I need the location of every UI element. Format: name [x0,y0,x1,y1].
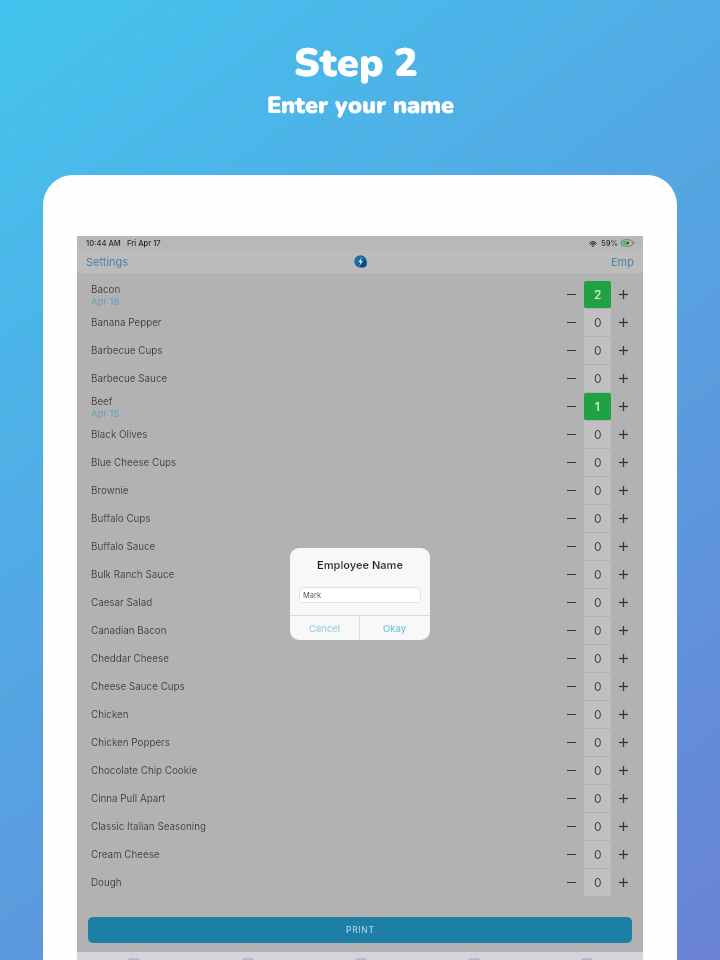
button[interactable]: Decrease Cheese Sauce Cups [560,672,582,700]
button[interactable]: 0 [584,561,611,588]
button[interactable]: Increase Cheddar Cheese [612,644,634,672]
button[interactable]: Waste [417,952,530,960]
button[interactable]: 0 [584,477,611,504]
button[interactable]: Increase Brownie [612,476,634,504]
button[interactable]: Increase Canadian Bacon [612,616,634,644]
button[interactable]: 0 [584,589,611,616]
button[interactable]: 0 [584,337,611,364]
button[interactable]: Chicken [77,700,643,728]
button[interactable]: Caesar Salad [77,588,643,616]
button[interactable]: 0 [584,785,611,812]
button[interactable]: Settings [530,952,643,960]
button[interactable]: Mark [299,587,421,603]
button[interactable]: Barbecue Cups [77,336,643,364]
button[interactable]: Decrease Blue Cheese Cups [560,448,582,476]
button[interactable]: 0 [584,729,611,756]
button[interactable]: 1 [584,393,611,420]
button[interactable]: Decrease Beef [560,392,582,420]
button[interactable]: Blue Cheese Cups [77,448,643,476]
button[interactable]: Decrease Bulk Ranch Sauce [560,560,582,588]
button[interactable]: Orders [77,952,191,960]
button[interactable]: Increase Barbecue Cups [612,336,634,364]
button[interactable]: Increase Barbecue Sauce [612,364,634,392]
button[interactable]: Increase Buffalo Sauce [612,532,634,560]
button[interactable]: Increase Black Olives [612,420,634,448]
button[interactable]: 0 [584,309,611,336]
button[interactable]: Decrease Canadian Bacon [560,616,582,644]
button[interactable]: Decrease Buffalo Sauce [560,532,582,560]
button[interactable]: Beef [77,392,643,420]
button[interactable]: Increase Cheese Sauce Cups [612,672,634,700]
button[interactable]: Increase Blue Cheese Cups [612,448,634,476]
button[interactable]: Decrease Chicken Poppers [560,728,582,756]
button[interactable]: Increase Caesar Salad [612,588,634,616]
button[interactable]: Decrease Black Olives [560,420,582,448]
button[interactable]: 0 [584,869,611,896]
button[interactable]: Reports [304,952,417,960]
button[interactable]: 0 [584,421,611,448]
button[interactable]: Inventory [191,952,304,960]
button[interactable]: Decrease Chocolate Chip Cookie [560,756,582,784]
button[interactable]: Decrease Cheddar Cheese [560,644,582,672]
button[interactable]: Dough [77,868,643,896]
button[interactable]: Decrease Chicken [560,700,582,728]
button[interactable]: 0 [584,701,611,728]
button[interactable]: Buffalo Sauce [77,532,643,560]
button[interactable]: Buffalo Cups [77,504,643,532]
button[interactable]: 0 [584,645,611,672]
button[interactable]: Decrease Dough [560,868,582,896]
button[interactable]: 0 [584,757,611,784]
button[interactable]: Increase Buffalo Cups [612,504,634,532]
button[interactable]: Increase Dough [612,868,634,896]
button[interactable]: Decrease Bacon [560,280,582,308]
button[interactable]: Bulk Ranch Sauce [77,560,643,588]
button[interactable]: Decrease Caesar Salad [560,588,582,616]
button[interactable]: Settings [81,251,134,272]
button[interactable]: Bacon [77,280,643,308]
button[interactable]: Increase Banana Pepper [612,308,634,336]
button[interactable]: Increase Cream Cheese [612,840,634,868]
button[interactable]: Increase Bulk Ranch Sauce [612,560,634,588]
button[interactable]: 2 [584,281,611,308]
button[interactable]: Banana Pepper [77,308,643,336]
button[interactable]: Decrease Classic Italian Seasoning [560,812,582,840]
button[interactable]: Barbecue Sauce [77,364,643,392]
button[interactable]: Increase Classic Italian Seasoning [612,812,634,840]
button[interactable]: Cheddar Cheese [77,644,643,672]
button[interactable]: 0 [584,673,611,700]
button[interactable]: 0 [584,505,611,532]
button[interactable]: Classic Italian Seasoning [77,812,643,840]
button[interactable]: Chocolate Chip Cookie [77,756,643,784]
button[interactable]: Decrease Barbecue Sauce [560,364,582,392]
button[interactable]: 0 [584,841,611,868]
button[interactable]: Emp [607,251,638,272]
button[interactable]: Decrease Banana Pepper [560,308,582,336]
button[interactable]: Increase Chicken Poppers [612,728,634,756]
button[interactable]: Decrease Buffalo Cups [560,504,582,532]
button[interactable]: Increase Chocolate Chip Cookie [612,756,634,784]
button[interactable]: 0 [584,449,611,476]
button[interactable]: Decrease Cinna Pull Apart [560,784,582,812]
button[interactable]: Decrease Barbecue Cups [560,336,582,364]
button[interactable]: PRINT [88,917,632,943]
button[interactable]: Cheese Sauce Cups [77,672,643,700]
button[interactable]: Canadian Bacon [77,616,643,644]
button[interactable]: 0 [584,533,611,560]
button[interactable]: Increase Beef [612,392,634,420]
button[interactable]: Okay [360,616,430,640]
button[interactable]: Increase Chicken [612,700,634,728]
button[interactable]: Chicken Poppers [77,728,643,756]
button[interactable]: Cream Cheese [77,840,643,868]
button[interactable]: 0 [584,813,611,840]
button[interactable]: 0 [584,365,611,392]
button[interactable]: Cinna Pull Apart [77,784,643,812]
button[interactable]: Brownie [77,476,643,504]
button[interactable]: Cancel [290,616,359,640]
button[interactable]: Decrease Cream Cheese [560,840,582,868]
button[interactable]: Black Olives [77,420,643,448]
button[interactable]: Increase Cinna Pull Apart [612,784,634,812]
button[interactable]: 0 [584,617,611,644]
button[interactable]: App logo [354,255,367,268]
button[interactable]: Increase Bacon [612,280,634,308]
button[interactable]: Decrease Brownie [560,476,582,504]
